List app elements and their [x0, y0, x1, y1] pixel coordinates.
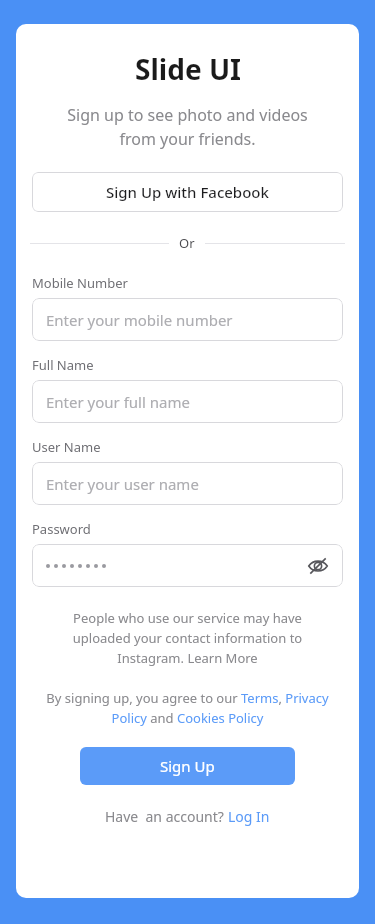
staticText: Sign Up [160, 756, 215, 776]
staticText: User Name [32, 438, 101, 456]
staticText: Sign Up with Facebook [106, 182, 269, 202]
staticText: Sign up to see photo and videos from you… [40, 104, 335, 150]
button[interactable]: Enter your full name [32, 380, 343, 423]
staticText: Full Name [32, 356, 94, 374]
staticText: Have an account? [105, 807, 228, 826]
button[interactable]: Have an account? [105, 807, 270, 826]
staticText: Slide UI [135, 50, 241, 88]
button[interactable]: Sign Up with Facebook [32, 172, 343, 212]
button[interactable]: Show password [303, 551, 333, 581]
staticText: Log In [228, 807, 270, 826]
staticText: Enter your user name [46, 474, 199, 494]
button[interactable]: Enter your mobile number [32, 298, 343, 341]
staticText: By signing up, you agree to our Terms, P… [32, 689, 343, 727]
staticText: Or [179, 234, 195, 252]
button[interactable]: Enter your user name [32, 462, 343, 505]
staticText: People who use our service may have uplo… [42, 609, 333, 667]
staticText: Password [32, 520, 91, 538]
staticText: Mobile Number [32, 274, 128, 292]
staticText: Enter your full name [46, 392, 190, 412]
button[interactable]: Sign Up [80, 747, 295, 785]
button[interactable]: Show password [32, 544, 343, 587]
staticText: Enter your mobile number [46, 310, 233, 330]
